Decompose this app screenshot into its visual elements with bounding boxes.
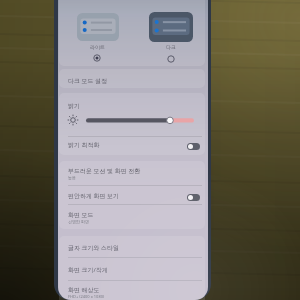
staticText: 부드러운 모션 및 화면 전환 bbox=[68, 167, 141, 175]
staticText: 화면 모드 bbox=[68, 211, 94, 219]
staticText: 다크 모드 설정 bbox=[68, 77, 108, 85]
staticText: 글자 크기와 스타일 bbox=[68, 244, 120, 252]
button[interactable]: Dark theme bbox=[149, 12, 193, 42]
staticText: 다크 bbox=[166, 44, 176, 50]
button[interactable] bbox=[59, 281, 205, 296]
button[interactable]: Selected option bbox=[91, 52, 103, 64]
button[interactable]: Brightness slider bbox=[84, 113, 196, 127]
staticText: 편안하게 화면 보기 bbox=[68, 192, 120, 200]
button[interactable]: Light theme bbox=[77, 13, 119, 41]
button[interactable] bbox=[59, 261, 205, 276]
staticText: 선명한 화면 bbox=[68, 219, 90, 224]
staticText: FHD+ (2400 x 1080) bbox=[68, 294, 105, 299]
staticText: 밝기 bbox=[68, 102, 80, 110]
button[interactable]: Toggle switch bbox=[187, 143, 200, 150]
button[interactable] bbox=[59, 137, 205, 152]
staticText: 높음 bbox=[68, 175, 76, 180]
staticText: 밝기 최적화 bbox=[68, 141, 100, 149]
staticText: 화면 크기/작게 bbox=[68, 266, 108, 274]
button[interactable] bbox=[59, 163, 205, 178]
button[interactable]: Unselected option bbox=[165, 53, 177, 65]
staticText: 화면 해상도 bbox=[68, 286, 100, 294]
button[interactable] bbox=[59, 207, 205, 222]
button[interactable] bbox=[59, 240, 205, 255]
button[interactable] bbox=[59, 73, 205, 88]
staticText: 라이트 bbox=[90, 44, 105, 50]
button[interactable]: Toggle switch bbox=[187, 194, 200, 201]
button[interactable] bbox=[59, 188, 205, 203]
